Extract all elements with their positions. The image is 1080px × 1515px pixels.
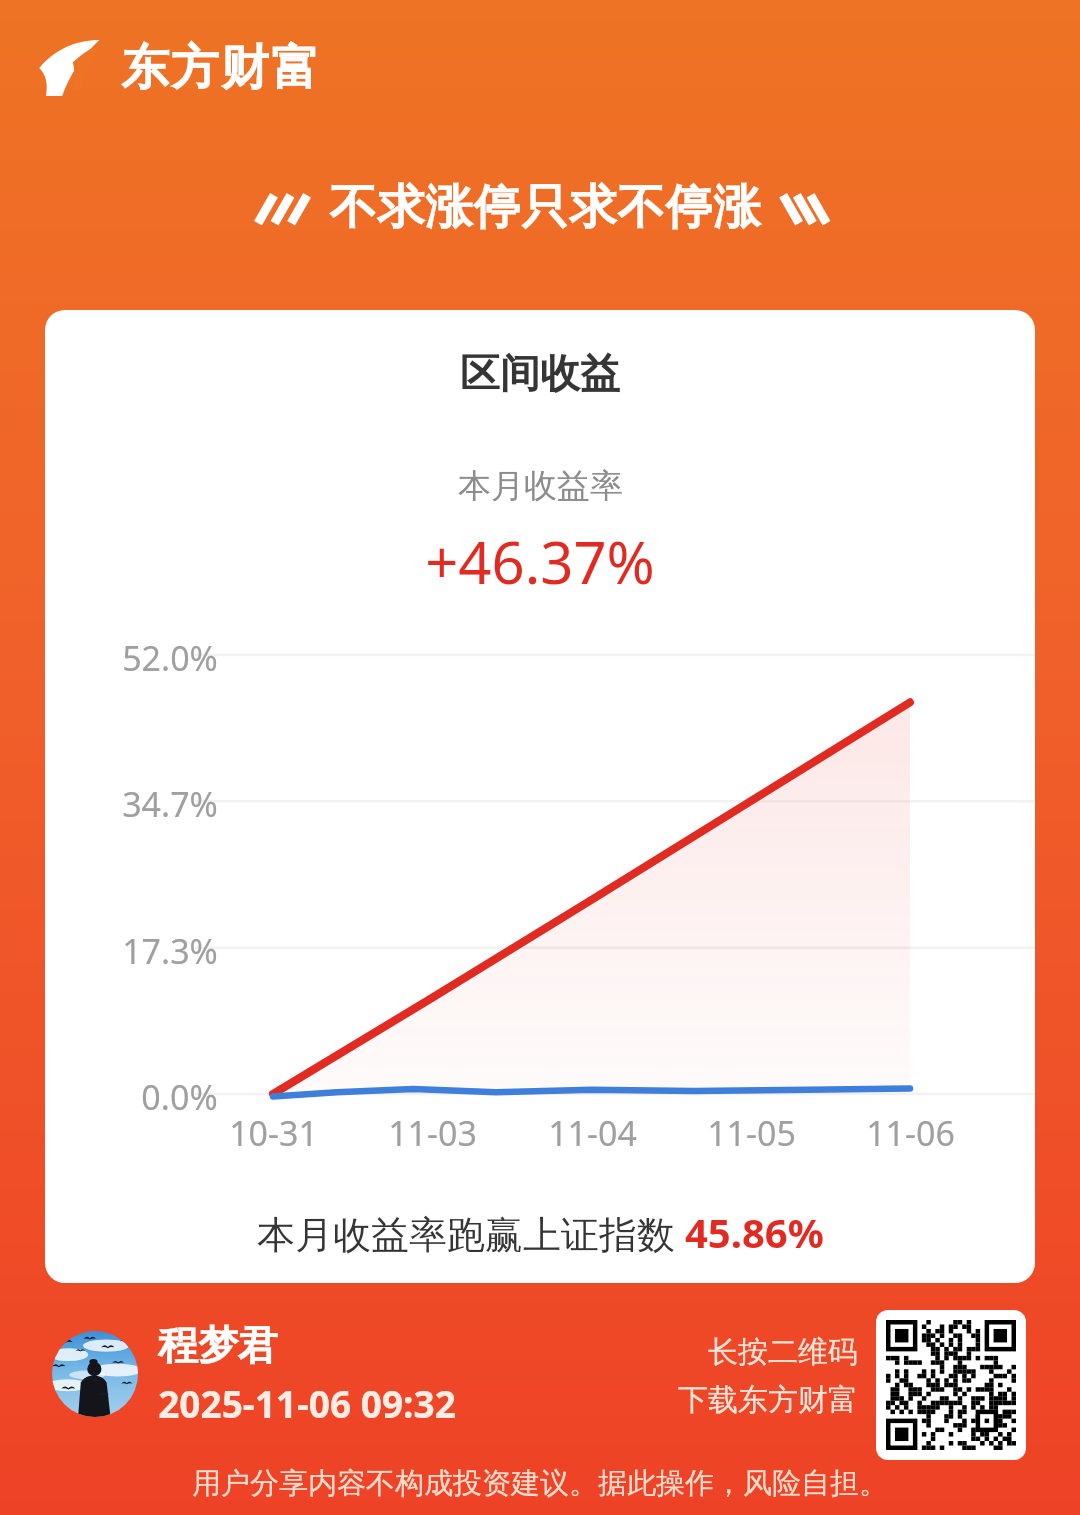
button[interactable]: 东方财富 — [38, 38, 320, 98]
staticText: 10-31 — [229, 1110, 318, 1156]
staticText: 长按二维码 — [708, 1333, 858, 1371]
staticText: 0.0% — [141, 1074, 218, 1120]
button[interactable]: 下载东方财富二维码 — [876, 1310, 1026, 1460]
staticText: 本月收益率跑赢上证指数 45.86% — [257, 1205, 824, 1259]
staticText: 区间收益 — [460, 348, 620, 398]
button[interactable]: 区间收益 — [45, 310, 1035, 1283]
staticText: 2025-11-06 09:32 — [158, 1378, 456, 1428]
staticText: 本月收益率 — [458, 465, 623, 507]
staticText: 34.7% — [122, 781, 218, 827]
staticText: 程梦君 — [158, 1320, 278, 1370]
staticText: 17.3% — [122, 928, 218, 974]
staticText: 11-03 — [388, 1110, 477, 1156]
staticText: 11-05 — [707, 1110, 796, 1156]
staticText: 52.0% — [122, 635, 218, 681]
staticText: 11-04 — [548, 1110, 637, 1156]
button[interactable]: 用户头像 — [52, 1320, 456, 1428]
staticText: 用户分享内容不构成投资建议。据此操作，风险自担。 — [192, 1465, 888, 1502]
staticText: 下载东方财富 — [678, 1381, 858, 1419]
staticText: 东方财富 — [120, 38, 320, 98]
staticText: 11-06 — [866, 1110, 955, 1156]
staticText: +46.37% — [425, 522, 655, 601]
button[interactable]: 用户头像 — [52, 1331, 138, 1417]
staticText: 不求涨停只求不停涨 — [329, 178, 761, 237]
